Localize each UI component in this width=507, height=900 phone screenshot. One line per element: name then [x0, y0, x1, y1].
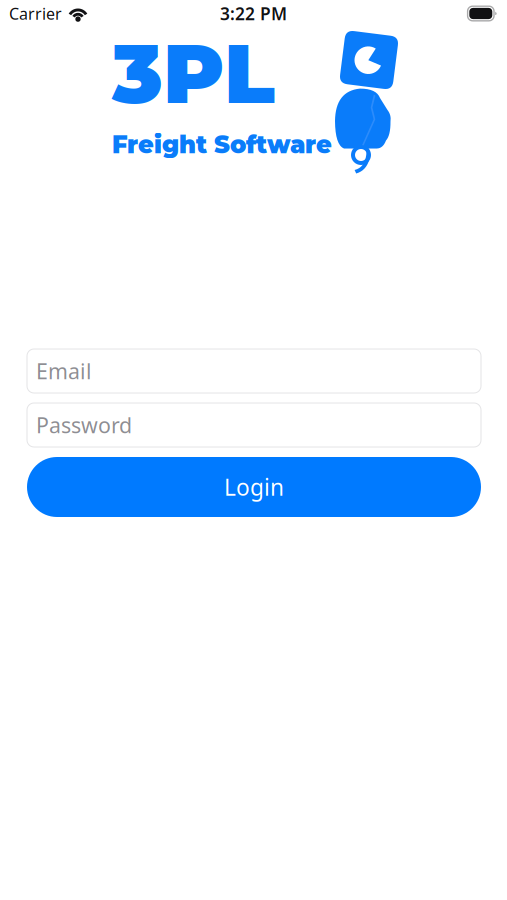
- staticText: Email: [36, 357, 92, 385]
- button[interactable]: Email: [27, 349, 481, 393]
- staticText: 3PL: [112, 23, 275, 124]
- staticText: Carrier: [9, 3, 62, 24]
- staticText: Freight Software: [112, 130, 332, 159]
- button[interactable]: Password: [27, 403, 481, 447]
- staticText: Password: [36, 411, 132, 439]
- button[interactable]: Login: [27, 457, 481, 517]
- staticText: Login: [224, 472, 284, 502]
- staticText: 3:22 PM: [220, 2, 287, 25]
